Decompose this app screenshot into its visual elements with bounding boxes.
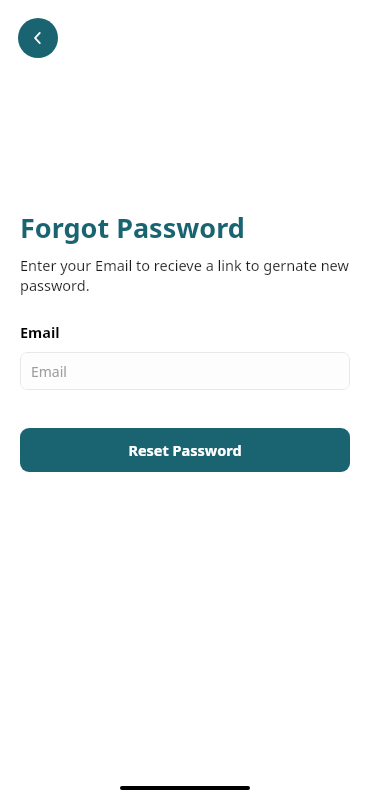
button[interactable]: Email: [20, 352, 350, 390]
staticText: Forgot Password: [20, 209, 245, 246]
button[interactable]: Back: [18, 18, 58, 58]
staticText: Email: [20, 322, 60, 342]
staticText: Enter your Email to recieve a link to ge…: [20, 255, 350, 296]
staticText: Reset Password: [128, 440, 242, 460]
staticText: Email: [31, 362, 67, 381]
button[interactable]: Reset Password: [20, 428, 350, 472]
